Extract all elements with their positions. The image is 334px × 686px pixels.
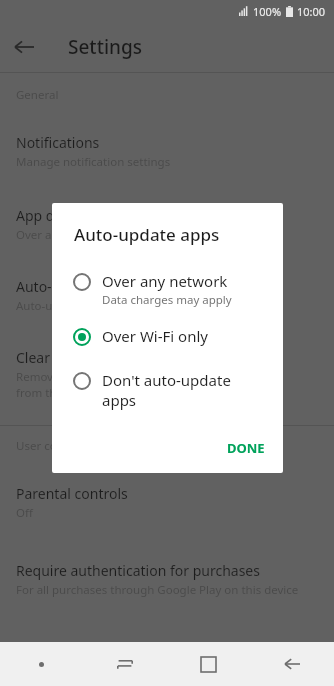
- staticText: 100%: [253, 4, 282, 19]
- staticText: Over Wi-Fi only: [102, 326, 208, 346]
- staticText: DONE: [227, 439, 265, 457]
- staticText: Over any network: [16, 227, 113, 243]
- button[interactable]: Back: [0, 23, 48, 71]
- staticText: General: [16, 87, 59, 103]
- button[interactable]: Don't auto-update apps: [52, 363, 283, 417]
- staticText: 10:00: [297, 4, 326, 19]
- button[interactable]: Recent apps: [83, 642, 166, 686]
- button[interactable]: Clear local search history: [0, 334, 334, 411]
- button[interactable]: Home: [166, 642, 250, 686]
- staticText: Settings: [68, 34, 142, 60]
- staticText: App download preference: [16, 206, 186, 225]
- staticText: Over any network: [102, 271, 228, 291]
- staticText: User controls: [16, 438, 88, 454]
- staticText: Remove the searches you have done from t…: [16, 369, 214, 401]
- staticText: Don't auto-update apps: [102, 370, 263, 410]
- button[interactable]: Notifications: [0, 119, 334, 180]
- staticText: Auto-update apps: [16, 277, 134, 296]
- button[interactable]: DONE: [209, 429, 283, 467]
- staticText: Manage notification settings: [16, 154, 171, 170]
- staticText: Clear local search history: [16, 348, 180, 367]
- staticText: For all purchases through Google Play on…: [16, 582, 299, 598]
- button[interactable]: Parental controls: [0, 470, 334, 531]
- staticText: Data charges may apply: [102, 292, 232, 308]
- button[interactable]: Back: [250, 642, 334, 686]
- button[interactable]: Require authentication for purchases: [0, 547, 334, 608]
- staticText: Auto-update apps: [74, 223, 220, 246]
- button[interactable]: Auto-update apps: [0, 263, 334, 324]
- staticText: Auto-update apps over Wi-Fi only: [16, 298, 195, 314]
- button[interactable]: App download preference: [0, 192, 334, 253]
- staticText: Parental controls: [16, 484, 128, 503]
- staticText: Notifications: [16, 133, 100, 152]
- button[interactable]: Over Wi-Fi only: [52, 319, 283, 353]
- staticText: Require authentication for purchases: [16, 561, 260, 580]
- button[interactable]: Over any network: [52, 264, 283, 315]
- staticText: Off: [16, 505, 33, 521]
